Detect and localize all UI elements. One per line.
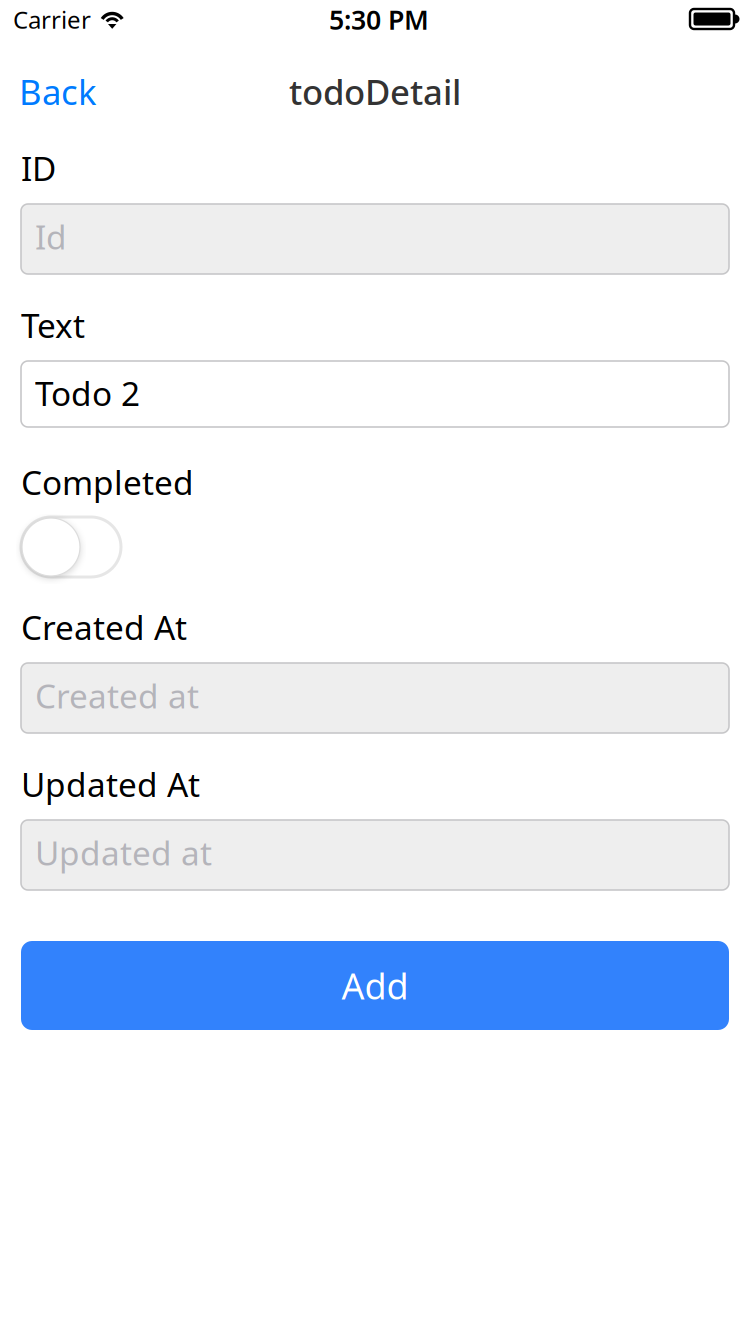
staticText: Created At — [21, 605, 187, 649]
button[interactable]: Completed — [21, 517, 121, 577]
staticText: Completed — [21, 460, 194, 504]
button[interactable]: Add — [21, 941, 729, 1030]
staticText: Created at — [35, 673, 199, 718]
staticText: Todo 2 — [35, 371, 140, 415]
staticText: Updated at — [35, 830, 212, 875]
staticText: Add — [341, 962, 408, 1009]
button[interactable]: Back — [19, 69, 97, 114]
staticText: ID — [21, 146, 56, 190]
staticText: Id — [35, 214, 67, 259]
staticText: Updated At — [21, 762, 200, 806]
staticText: Text — [21, 303, 85, 347]
staticText: Carrier — [13, 4, 91, 35]
staticText: todoDetail — [289, 68, 461, 114]
staticText: 5:30 PM — [329, 2, 429, 37]
staticText: Back — [19, 68, 97, 114]
